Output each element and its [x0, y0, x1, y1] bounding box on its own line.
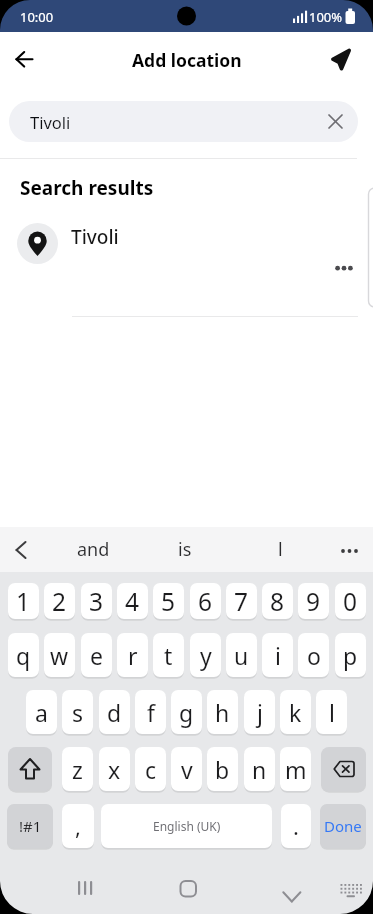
button[interactable]: k — [280, 690, 311, 734]
button[interactable]: r — [117, 633, 148, 677]
button[interactable]: f — [135, 690, 166, 734]
button[interactable]: and — [62, 527, 124, 572]
staticText: k — [289, 697, 302, 728]
staticText: h — [215, 697, 230, 728]
button[interactable]: v — [171, 747, 202, 791]
button[interactable]: t — [153, 633, 184, 677]
button[interactable] — [66, 868, 104, 906]
staticText: Done — [324, 816, 362, 836]
button[interactable]: a — [26, 690, 57, 734]
button[interactable]: m — [280, 747, 311, 791]
button[interactable]: i — [262, 633, 293, 677]
button[interactable]: 0 — [335, 583, 366, 619]
button[interactable]: . — [281, 804, 311, 848]
staticText: English (UK) — [153, 818, 221, 834]
staticText: e — [90, 640, 103, 671]
button[interactable]: 8 — [262, 583, 293, 619]
staticText: t — [164, 640, 173, 671]
staticText: n — [252, 754, 267, 785]
staticText: 0 — [343, 585, 358, 618]
staticText: 9 — [306, 585, 321, 618]
button[interactable]: 1 — [8, 583, 39, 619]
button[interactable]: , — [62, 804, 94, 848]
staticText: y — [200, 640, 212, 671]
button[interactable]: s — [62, 690, 93, 734]
staticText: d — [107, 697, 122, 728]
staticText: 10:00 — [20, 8, 54, 26]
button[interactable]: u — [226, 633, 257, 677]
button[interactable]: Tivoli — [0, 218, 373, 316]
button[interactable]: n — [244, 747, 275, 791]
button[interactable]: q — [8, 633, 39, 677]
button[interactable]: z — [62, 747, 93, 791]
button[interactable] — [334, 535, 366, 565]
staticText: , — [75, 811, 81, 841]
staticText: 2 — [52, 585, 67, 618]
button[interactable]: English (UK) — [101, 804, 272, 848]
button[interactable] — [336, 878, 366, 900]
button[interactable] — [273, 868, 311, 906]
staticText: i — [275, 640, 281, 671]
button[interactable]: 7 — [226, 583, 257, 619]
staticText: 6 — [198, 585, 213, 618]
staticText: c — [145, 754, 157, 785]
button[interactable]: 5 — [153, 583, 184, 619]
staticText: z — [72, 754, 83, 785]
staticText: Add location — [132, 48, 242, 72]
button[interactable] — [6, 50, 42, 86]
button[interactable] — [169, 868, 207, 906]
staticText: w — [50, 640, 69, 671]
staticText: r — [128, 640, 138, 671]
button[interactable]: w — [44, 633, 75, 677]
button[interactable]: !#1 — [7, 804, 53, 848]
staticText: f — [147, 697, 155, 728]
button[interactable]: j — [244, 690, 275, 734]
button[interactable]: 3 — [81, 583, 112, 619]
button[interactable]: 6 — [190, 583, 221, 619]
staticText: 7 — [234, 585, 249, 618]
staticText: g — [179, 697, 194, 728]
staticText: is — [178, 537, 192, 562]
button[interactable]: Tivoli — [9, 101, 358, 142]
button[interactable] — [8, 747, 52, 791]
staticText: 5 — [161, 585, 176, 618]
button[interactable]: 4 — [117, 583, 148, 619]
button[interactable]: g — [171, 690, 202, 734]
button[interactable]: c — [135, 747, 166, 791]
staticText: a — [35, 697, 48, 728]
staticText: p — [343, 640, 358, 671]
button[interactable]: 2 — [44, 583, 75, 619]
button[interactable]: h — [207, 690, 238, 734]
button[interactable] — [322, 108, 349, 135]
staticText: l — [278, 537, 283, 562]
button[interactable]: l — [316, 690, 347, 734]
staticText: x — [108, 754, 121, 785]
button[interactable] — [8, 535, 38, 565]
staticText: Tivoli — [30, 111, 71, 133]
staticText: l — [329, 697, 335, 728]
staticText: and — [77, 537, 110, 562]
button[interactable]: b — [207, 747, 238, 791]
button[interactable]: o — [298, 633, 329, 677]
button[interactable]: x — [99, 747, 130, 791]
staticText: 100% — [309, 8, 343, 26]
staticText: 3 — [89, 585, 104, 618]
button[interactable]: d — [99, 690, 130, 734]
staticText: m — [285, 754, 307, 785]
staticText: !#1 — [19, 816, 42, 836]
button[interactable]: Done — [320, 804, 366, 848]
button[interactable]: e — [81, 633, 112, 677]
button[interactable]: y — [190, 633, 221, 677]
button[interactable]: l — [249, 527, 311, 572]
button[interactable] — [321, 747, 366, 791]
button[interactable] — [322, 42, 358, 78]
button[interactable]: is — [154, 527, 216, 572]
button[interactable]: p — [335, 633, 366, 677]
staticText: j — [257, 697, 263, 728]
button[interactable] — [328, 256, 360, 280]
button[interactable]: 9 — [298, 583, 329, 619]
staticText: 1 — [16, 585, 31, 618]
staticText: q — [16, 640, 31, 671]
staticText: 8 — [270, 585, 285, 618]
staticText: Search results — [20, 175, 154, 201]
